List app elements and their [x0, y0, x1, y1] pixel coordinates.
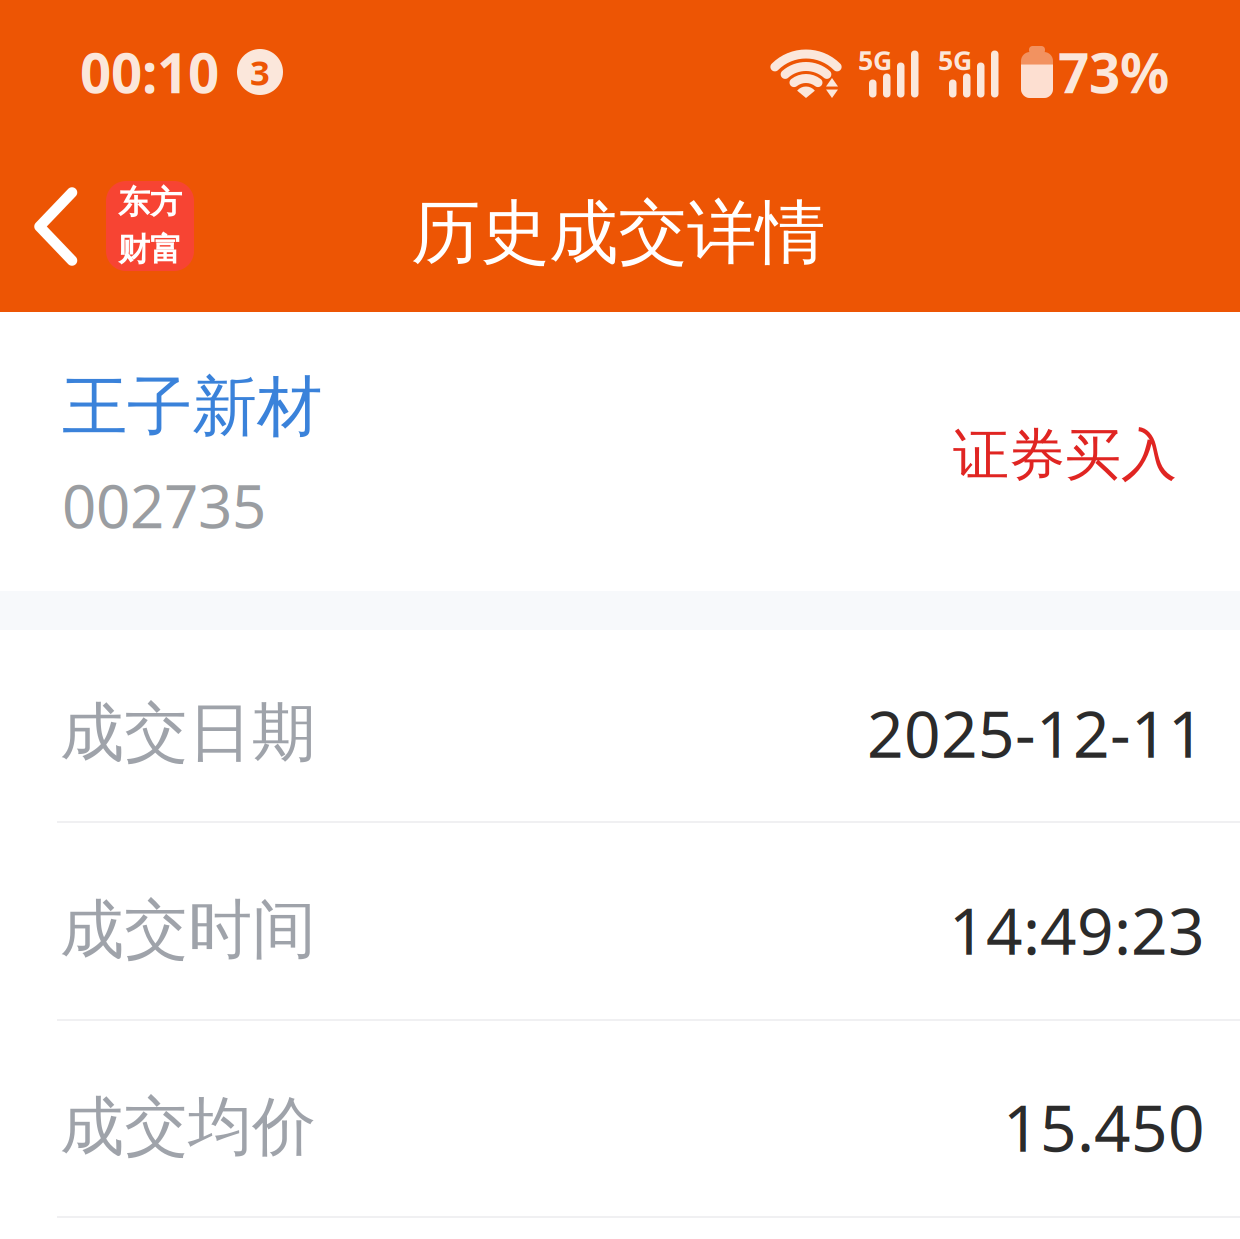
staticText: 14:49:23 — [949, 887, 1205, 972]
staticText: 002735 — [62, 465, 266, 545]
staticText: 历史成交详情 — [411, 190, 825, 276]
staticText: 15.450 — [1003, 1084, 1205, 1169]
staticText: 成交日期 — [60, 694, 316, 772]
staticText: 00:10 — [80, 36, 219, 108]
staticText: 73% — [1058, 36, 1169, 108]
staticText: 成交均价 — [60, 1088, 316, 1166]
staticText: 成交时间 — [60, 891, 316, 969]
staticText: 5G — [858, 42, 892, 78]
staticText: 3 — [250, 49, 270, 95]
staticText: 王子新材 — [62, 367, 322, 447]
staticText: 证券买入 — [953, 421, 1177, 489]
staticText: 2025-12-11 — [867, 690, 1205, 775]
button[interactable]: Back — [36, 190, 75, 262]
staticText: 东方 — [118, 183, 182, 222]
staticText: 财富 — [118, 230, 182, 269]
staticText: 5G — [938, 42, 972, 78]
